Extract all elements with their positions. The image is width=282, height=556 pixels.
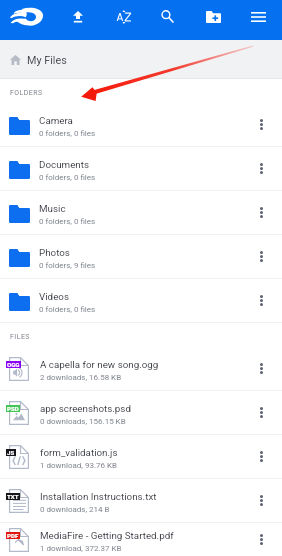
button[interactable]: Videos [0,279,282,323]
button[interactable]: More options [240,235,282,278]
button[interactable]: More options [240,191,282,234]
staticText: My Files [27,54,67,67]
staticText: 0 folders, 0 files [39,305,96,314]
button[interactable]: More options [240,523,282,556]
staticText: 0 folders, 0 files [39,173,96,182]
button[interactable]: Upload [55,0,100,33]
button[interactable]: JS [0,435,282,479]
staticText: FILES [10,333,30,341]
staticText: 1 download, 372.37 KB [40,544,122,553]
staticText: 1 download, 93.76 KB [40,461,117,470]
staticText: 0 folders, 0 files [39,129,96,138]
button[interactable]: PSD [0,391,282,435]
staticText: A capella for new song.ogg [40,359,159,370]
staticText: 0 downloads, 156.15 KB [40,417,126,426]
staticText: 2 downloads, 16.58 KB [40,373,122,382]
button[interactable]: OGG [0,347,282,391]
button[interactable]: More options [240,435,282,478]
staticText: 0 folders, 9 files [39,261,96,270]
staticText: form_validation.js [40,447,118,458]
staticText: Documents [39,159,90,170]
button[interactable]: Music [0,191,282,235]
button[interactable]: PDF [0,523,282,556]
button[interactable]: More options [240,279,282,322]
staticText: PDF [7,532,19,539]
staticText: OGG [7,361,20,368]
staticText: Installation Instructions.txt [40,491,157,502]
button[interactable]: MediaFire [5,0,48,33]
button[interactable]: Sort A to Z [100,0,145,33]
staticText: FOLDERS [10,89,43,97]
staticText: Videos [39,291,69,302]
button[interactable]: My Files [0,40,282,78]
staticText: Music [39,203,66,214]
staticText: app screenshots.psd [40,403,131,414]
button[interactable]: More options [240,147,282,190]
staticText: JS [7,449,15,456]
button[interactable]: Search [145,0,190,33]
button[interactable]: New folder [190,0,235,33]
button[interactable]: More options [240,391,282,434]
staticText: PSD [7,405,19,412]
staticText: 0 folders, 0 files [39,217,96,226]
button[interactable]: TXT [0,479,282,523]
button[interactable]: More options [240,479,282,522]
button[interactable]: More options [240,103,282,146]
button[interactable]: More options [240,347,282,390]
button[interactable]: Photos [0,235,282,279]
button[interactable]: Menu [235,0,280,33]
staticText: Photos [39,247,70,258]
staticText: 0 downloads, 214 B [40,505,110,514]
button[interactable]: Documents [0,147,282,191]
staticText: Camera [39,115,73,126]
staticText: MediaFire - Getting Started.pdf [40,530,174,541]
button[interactable]: Camera [0,103,282,147]
staticText: TXT [7,493,19,500]
